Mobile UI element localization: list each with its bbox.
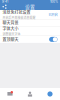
button[interactable]: 字体大小 bbox=[0, 27, 60, 36]
staticText: 调整聊天字体 bbox=[2, 32, 20, 36]
button[interactable]: Contacts bbox=[20, 88, 40, 100]
staticText: 设置 bbox=[25, 3, 35, 10]
staticText: 消息免打扰设置 bbox=[2, 9, 30, 15]
staticText: 100% bbox=[50, 0, 58, 4]
staticText: 9:41 bbox=[2, 0, 8, 4]
staticText: 开启后不再接收消息提醒 bbox=[2, 15, 35, 20]
staticText: 字体大小 bbox=[2, 26, 18, 32]
button[interactable]: Chats bbox=[0, 88, 20, 100]
button[interactable]: 置顶聊天 bbox=[0, 36, 60, 43]
button[interactable]: Share bbox=[2, 4, 7, 9]
staticText: 聊天背景 bbox=[2, 20, 18, 26]
button[interactable]: 聊天背景 bbox=[0, 19, 60, 26]
staticText: 已开启 bbox=[48, 12, 57, 17]
button[interactable]: Me bbox=[40, 88, 60, 100]
staticText: 置顶聊天 bbox=[2, 36, 18, 42]
button[interactable]: 消息免打扰设置 bbox=[0, 10, 60, 19]
